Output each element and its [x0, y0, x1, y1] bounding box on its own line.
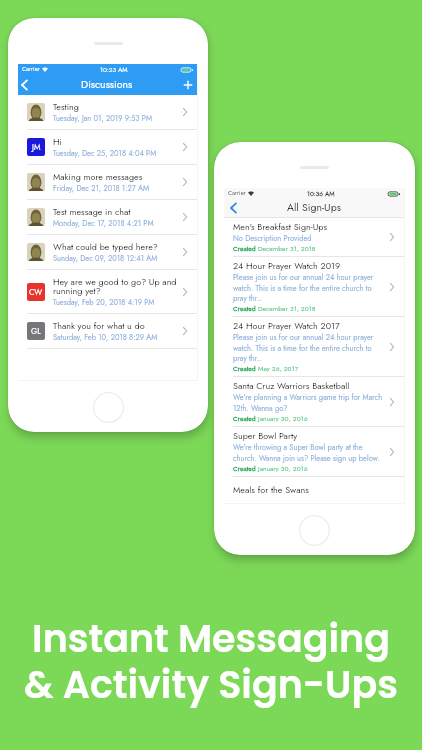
button[interactable]: Super Bowl Party — [224, 427, 404, 477]
button[interactable]: Testing — [18, 95, 197, 130]
staticText: All Sign-Ups — [287, 200, 341, 215]
button[interactable]: GL — [18, 314, 197, 349]
button[interactable]: Santa Cruz Warriors Basketball — [224, 377, 404, 427]
staticText: Testing — [53, 100, 79, 113]
staticText: Hey are we good to go? Up and running ye… — [53, 275, 179, 297]
staticText: What could be typed here? — [53, 240, 158, 253]
staticText: Santa Cruz Warriors Basketball — [233, 379, 350, 392]
staticText: December 31, 2018 — [258, 304, 316, 314]
staticText: January 30, 2016 — [258, 464, 308, 474]
staticText: GL — [31, 325, 41, 337]
staticText: 24 Hour Prayer Watch 2019 — [233, 259, 341, 272]
staticText: December 31, 2018 — [258, 244, 316, 254]
staticText: Created — [233, 304, 258, 314]
button[interactable]: Back — [226, 201, 240, 215]
staticText: Created — [233, 364, 258, 374]
staticText: CW — [29, 286, 43, 298]
staticText: Tuesday, Feb 20, 2018 4:19 PM — [53, 297, 155, 308]
button[interactable]: Test message in chat — [18, 200, 197, 235]
staticText: Friday, Dec 21, 2018 1:27 AM — [53, 183, 149, 194]
staticText: Monday, Dec 17, 2018 4:21 PM — [53, 218, 154, 229]
button[interactable]: What could be typed here? — [18, 235, 197, 270]
button[interactable]: New discussion — [181, 78, 195, 92]
staticText: Instant Messaging & Activity Sign-Ups — [0, 612, 422, 711]
staticText: Tuesday, Jan 01, 2019 9:53 PM — [53, 113, 153, 124]
staticText: Carrier — [22, 65, 40, 74]
staticText: Thank you for what u do — [53, 319, 145, 332]
staticText: 24 Hour Prayer Watch 2017 — [233, 319, 340, 332]
button[interactable]: Meals for the Swans — [224, 477, 404, 496]
staticText: Sunday, Dec 09, 2018 12:41 AM — [53, 253, 158, 264]
staticText: Tuesday, Dec 25, 2018 4:04 PM — [53, 148, 157, 159]
button[interactable]: 24 Hour Prayer Watch 2019 — [224, 257, 404, 317]
staticText: Saturday, Feb 10, 2018 8:29 AM — [53, 332, 158, 343]
staticText: 10:23 AM — [100, 65, 128, 74]
staticText: Super Bowl Party — [233, 429, 298, 442]
staticText: Created — [233, 244, 258, 254]
staticText: JM — [32, 141, 41, 153]
button[interactable]: Back — [17, 78, 31, 92]
staticText: January 30, 2016 — [258, 414, 308, 424]
staticText: Created — [233, 464, 258, 474]
staticText: Making more messages — [53, 170, 143, 183]
button[interactable]: 24 Hour Prayer Watch 2017 — [224, 317, 404, 377]
staticText: We're throwing a Super Bowl party at the… — [233, 442, 386, 464]
staticText: Please join us for our annual 24 hour pr… — [233, 332, 386, 364]
staticText: Created — [233, 414, 258, 424]
staticText: No Description Provided — [233, 233, 312, 244]
button[interactable]: JM — [18, 130, 197, 165]
staticText: May 26, 2017 — [258, 364, 299, 374]
button[interactable]: CW — [18, 270, 197, 314]
staticText: We're planning a Warriors game trip for … — [233, 392, 386, 414]
staticText: 10:36 AM — [307, 189, 335, 198]
staticText: Please join us for our annual 24 hour pr… — [233, 272, 386, 304]
button[interactable]: Men's Breakfast Sign-Ups — [224, 218, 404, 257]
staticText: Men's Breakfast Sign-Ups — [233, 220, 328, 233]
staticText: Discussions — [81, 77, 133, 92]
staticText: Test message in chat — [53, 205, 131, 218]
staticText: Carrier — [228, 189, 246, 198]
staticText: Meals for the Swans — [233, 483, 309, 496]
button[interactable]: Making more messages — [18, 165, 197, 200]
staticText: Hi — [53, 135, 62, 148]
